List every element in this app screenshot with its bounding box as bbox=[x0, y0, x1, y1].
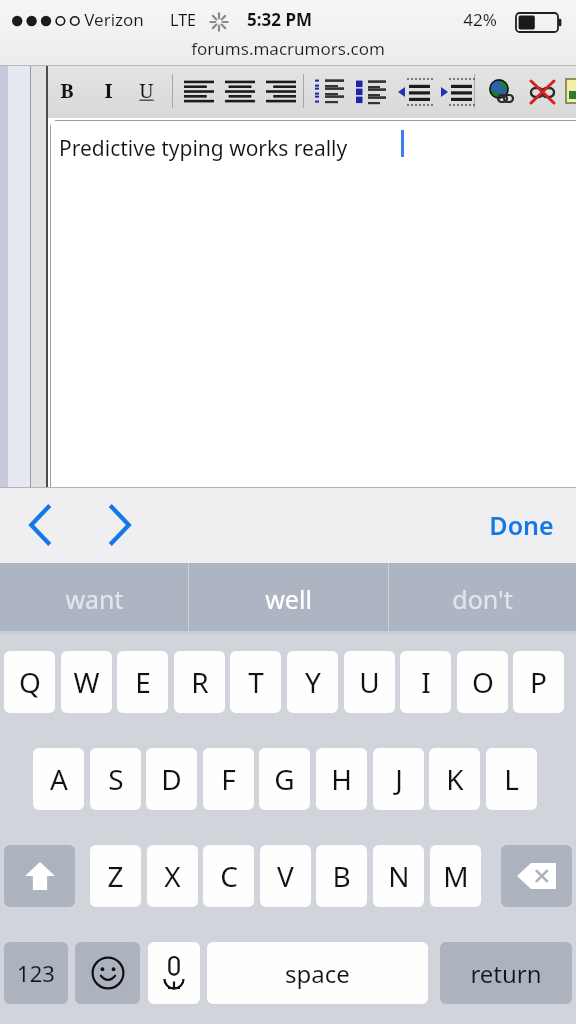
button[interactable]: Dictation bbox=[148, 942, 200, 1004]
staticText: P bbox=[530, 663, 547, 701]
button[interactable]: Q bbox=[4, 651, 55, 713]
staticText: 42% bbox=[463, 8, 497, 31]
button[interactable]: P bbox=[513, 651, 564, 713]
button[interactable]: Outdent bbox=[398, 78, 430, 106]
button[interactable]: Emoji bbox=[75, 942, 140, 1004]
button[interactable]: Numbered list bbox=[314, 80, 344, 104]
staticText: Verizon bbox=[84, 8, 144, 31]
staticText: Predictive typing works really bbox=[59, 134, 348, 163]
staticText: F bbox=[221, 760, 236, 798]
button[interactable]: Previous field bbox=[12, 487, 68, 563]
button[interactable]: Edit bbox=[566, 79, 576, 107]
button[interactable]: V bbox=[260, 845, 311, 907]
staticText: V bbox=[277, 857, 294, 895]
staticText: W bbox=[73, 663, 100, 701]
button[interactable]: Align bbox=[266, 80, 296, 104]
button[interactable]: X bbox=[147, 845, 198, 907]
button[interactable]: don't bbox=[389, 563, 576, 634]
staticText: O bbox=[472, 663, 494, 701]
staticText: Q bbox=[19, 663, 41, 701]
staticText: space bbox=[285, 957, 350, 990]
button[interactable]: J bbox=[373, 748, 424, 810]
staticText: 5:32 PM bbox=[247, 8, 312, 31]
button[interactable]: Insert link bbox=[488, 79, 518, 107]
button[interactable]: C bbox=[203, 845, 254, 907]
button[interactable]: Indent bbox=[440, 78, 472, 106]
button[interactable]: want bbox=[0, 563, 188, 634]
staticText: U bbox=[359, 663, 380, 701]
button[interactable]: A bbox=[33, 748, 84, 810]
button[interactable]: I bbox=[400, 651, 451, 713]
staticText: M bbox=[443, 857, 469, 895]
staticText: don't bbox=[452, 582, 513, 616]
button[interactable]: S bbox=[90, 748, 141, 810]
button[interactable]: Next field bbox=[92, 487, 148, 563]
staticText: 123 bbox=[17, 958, 55, 988]
button[interactable]: Align bbox=[225, 80, 255, 104]
button[interactable]: M bbox=[430, 845, 481, 907]
staticText: S bbox=[108, 760, 124, 798]
button[interactable]: W bbox=[61, 651, 112, 713]
button[interactable]: Backspace bbox=[501, 845, 572, 907]
staticText: Done bbox=[489, 508, 554, 542]
staticText: T bbox=[248, 663, 264, 701]
button[interactable]: F bbox=[203, 748, 254, 810]
button[interactable]: L bbox=[486, 748, 537, 810]
button[interactable]: Align bbox=[184, 80, 214, 104]
staticText: return bbox=[470, 957, 542, 990]
button[interactable]: Remove link bbox=[530, 80, 560, 106]
button[interactable]: space bbox=[207, 942, 428, 1004]
staticText: B bbox=[60, 77, 74, 104]
staticText: want bbox=[65, 582, 124, 616]
button[interactable]: U bbox=[344, 651, 395, 713]
button[interactable]: return bbox=[440, 942, 572, 1004]
staticText: X bbox=[164, 857, 181, 895]
staticText: A bbox=[50, 760, 68, 798]
button[interactable]: N bbox=[373, 845, 424, 907]
button[interactable]: 123 bbox=[4, 942, 68, 1004]
staticText: LTE bbox=[170, 9, 196, 31]
staticText: forums.macrumors.com bbox=[0, 37, 576, 60]
staticText: G bbox=[274, 760, 295, 798]
button[interactable]: Bulleted list bbox=[356, 80, 386, 104]
staticText: J bbox=[395, 760, 403, 798]
staticText: I bbox=[421, 663, 431, 701]
staticText: B bbox=[332, 857, 351, 895]
button[interactable]: T bbox=[230, 651, 281, 713]
button[interactable]: K bbox=[429, 748, 480, 810]
staticText: well bbox=[265, 582, 312, 616]
button[interactable]: H bbox=[316, 748, 367, 810]
button[interactable]: R bbox=[174, 651, 225, 713]
button[interactable]: E bbox=[117, 651, 168, 713]
staticText: Y bbox=[305, 663, 321, 701]
staticText: K bbox=[446, 760, 464, 798]
staticText: D bbox=[161, 760, 182, 798]
staticText: N bbox=[388, 857, 410, 895]
button[interactable]: Shift bbox=[4, 845, 75, 907]
staticText: L bbox=[504, 760, 519, 798]
staticText: E bbox=[135, 663, 151, 701]
button[interactable]: Done bbox=[467, 487, 576, 563]
staticText: U bbox=[139, 77, 154, 104]
button[interactable]: Z bbox=[90, 845, 141, 907]
button[interactable]: D bbox=[146, 748, 197, 810]
staticText: R bbox=[191, 663, 209, 701]
button[interactable]: O bbox=[457, 651, 508, 713]
staticText: I bbox=[104, 77, 113, 104]
button[interactable]: B bbox=[316, 845, 367, 907]
button[interactable]: Y bbox=[287, 651, 338, 713]
staticText: C bbox=[220, 857, 238, 895]
button[interactable]: G bbox=[259, 748, 310, 810]
staticText: Z bbox=[107, 857, 124, 895]
staticText: H bbox=[331, 760, 352, 798]
button[interactable]: well bbox=[189, 563, 388, 634]
